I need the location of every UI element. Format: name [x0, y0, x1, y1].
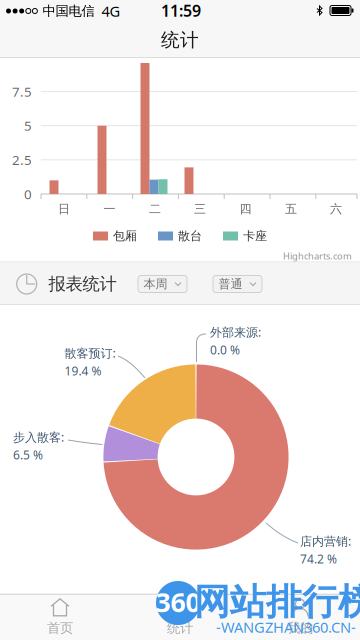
staticText: 普通	[218, 277, 242, 291]
staticText: 散客预订:	[64, 345, 115, 361]
staticText: 外部来源:	[210, 324, 261, 340]
staticText: 日	[58, 202, 70, 216]
staticText: 11:59	[161, 0, 201, 21]
button[interactable]: 卡座	[223, 229, 267, 243]
staticText: 三	[194, 202, 206, 216]
staticText: 卡座	[243, 229, 267, 243]
staticText: -WANGZHAN360.CN-	[216, 617, 356, 637]
button[interactable]: 我的	[250, 596, 350, 638]
staticText: 0.0 %	[210, 342, 240, 358]
staticText: 0	[24, 185, 32, 203]
staticText: 一	[103, 202, 115, 216]
staticText: 二	[149, 202, 161, 216]
staticText: Highcharts.com	[283, 250, 352, 262]
button[interactable]: 本周	[138, 275, 187, 292]
staticText: 五	[285, 202, 297, 216]
button[interactable]: 包厢	[93, 229, 137, 243]
button[interactable]: 统计	[130, 596, 230, 638]
staticText: 360	[155, 584, 200, 620]
staticText: 19.4 %	[64, 363, 101, 379]
staticText: 步入散客:	[13, 429, 64, 445]
staticText: 店内营销:	[300, 533, 351, 549]
staticText: 首页	[47, 620, 73, 636]
button[interactable]: 散台	[158, 229, 202, 243]
staticText: 四	[239, 202, 251, 216]
staticText: 2.5	[12, 151, 32, 169]
staticText: 报表统计	[48, 273, 116, 295]
staticText: 7.5	[12, 83, 32, 100]
button[interactable]: 首页	[10, 596, 110, 638]
staticText: 中国电信	[42, 3, 94, 19]
staticText: 74.2 %	[300, 551, 337, 567]
staticText: 5	[24, 117, 32, 134]
staticText: 4G	[101, 1, 120, 21]
staticText: 包厢	[113, 229, 137, 243]
staticText: 网站排行榜	[194, 580, 360, 624]
staticText: 我的	[287, 620, 313, 636]
staticText: 六	[330, 202, 342, 216]
staticText: 统计	[161, 28, 199, 51]
staticText: 统计	[167, 620, 193, 636]
staticText: 6.5 %	[13, 447, 43, 463]
button[interactable]: 普通	[213, 275, 262, 292]
staticText: 散台	[178, 229, 202, 243]
staticText: 本周	[143, 277, 167, 291]
